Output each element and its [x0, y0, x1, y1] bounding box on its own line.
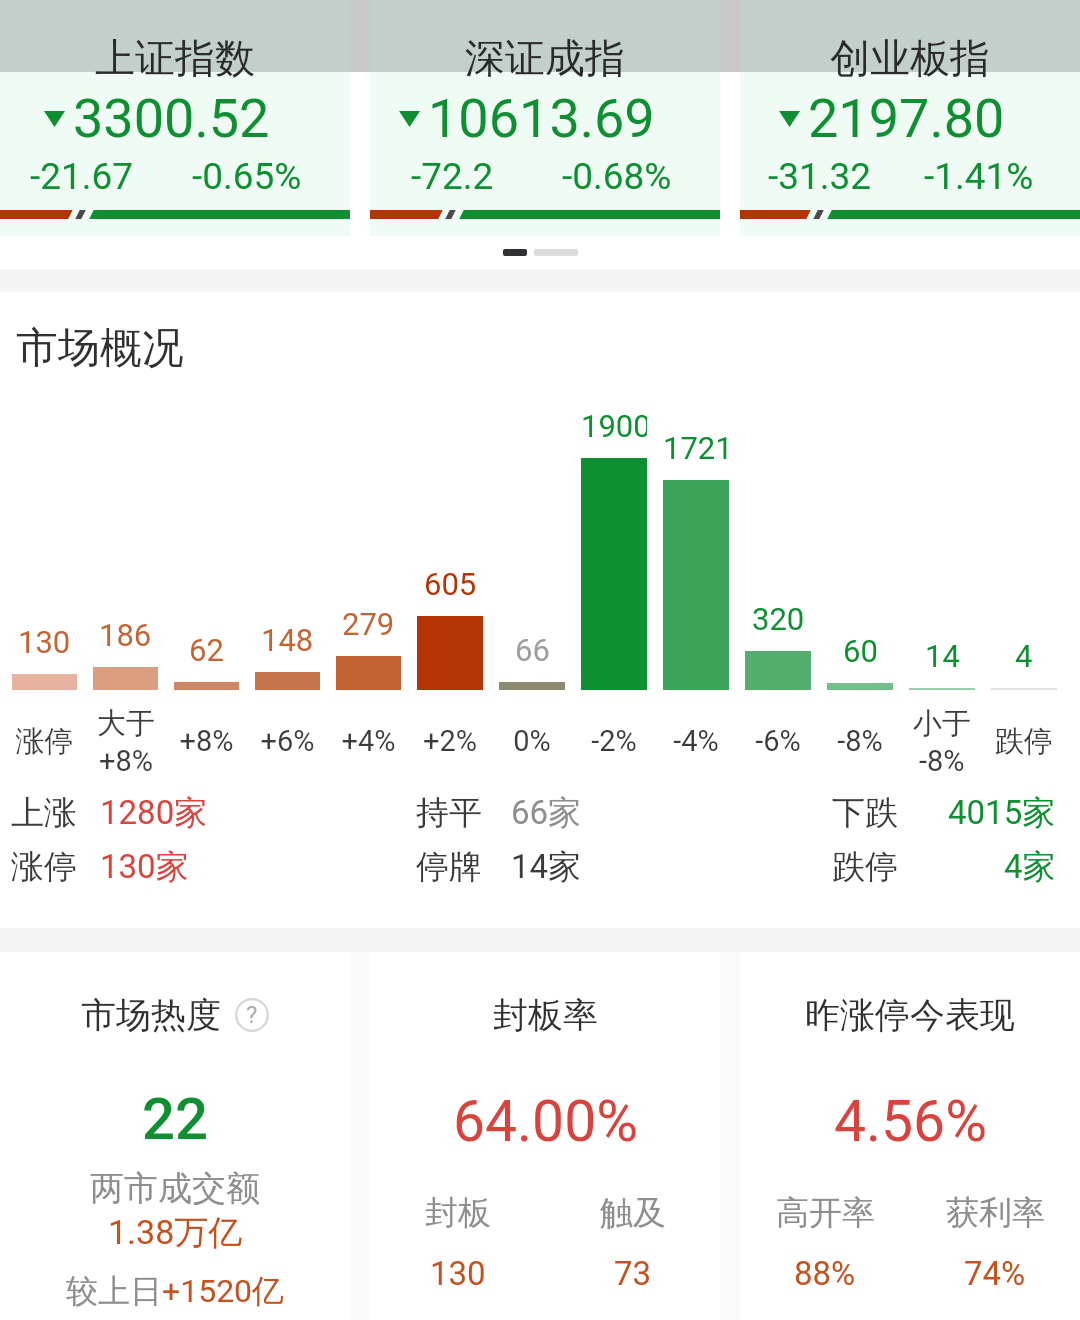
staticText: 1721 [663, 430, 729, 466]
staticText: 1900 [581, 408, 647, 444]
staticText: 深证成指 [370, 33, 720, 83]
staticText: -8% [827, 724, 893, 758]
button[interactable]: 市场热度 [0, 952, 350, 1320]
staticText: 10613.69 [428, 87, 655, 150]
staticText: 昨涨停今表现 [805, 993, 1015, 1037]
staticText: -6% [745, 724, 811, 758]
staticText: 小于 [913, 705, 971, 742]
staticText: 66家 [511, 792, 582, 833]
staticText: 创业板指 [740, 33, 1080, 83]
staticText: 186 [99, 617, 152, 653]
staticText: +6% [255, 724, 320, 758]
staticText: 跌停 [991, 723, 1057, 760]
staticText: 60 [843, 633, 878, 669]
staticText: 较上日+1520亿 [66, 1271, 285, 1311]
staticText: 3300.52 [73, 87, 270, 150]
staticText: 大于 [97, 705, 155, 742]
staticText: +8% [99, 744, 153, 778]
staticText: 148 [261, 622, 314, 658]
staticText: -72.2 [411, 155, 494, 198]
button[interactable]: 上证指数 [0, 0, 350, 236]
staticText: 下跌 [832, 792, 898, 833]
staticText: 1280家 [100, 792, 208, 833]
button[interactable]: 封板率 [370, 952, 720, 1320]
staticText: 14 [925, 638, 960, 674]
staticText: 1.38万亿 [108, 1211, 243, 1254]
button[interactable]: 创业板指 [740, 0, 1080, 236]
staticText: -31.32 [768, 155, 872, 198]
staticText: 4015家 [948, 792, 1056, 833]
staticText: 73 [614, 1254, 652, 1293]
staticText: 74% [964, 1254, 1026, 1293]
staticText: -2% [581, 724, 647, 758]
staticText: -0.68% [562, 155, 672, 198]
staticText: +8% [174, 724, 239, 758]
button[interactable]: 帮助 [235, 998, 269, 1032]
staticText: 130 [18, 624, 71, 660]
staticText: 22 [142, 1085, 208, 1153]
button[interactable]: 深证成指 [370, 0, 720, 236]
staticText: 14家 [511, 846, 582, 887]
staticText: 停牌 [416, 846, 482, 887]
staticText: 320 [752, 601, 805, 637]
staticText: 4 [1015, 638, 1033, 674]
staticText: 4.56% [834, 1088, 987, 1155]
staticText: 封板率 [493, 993, 598, 1037]
staticText: ? [246, 1001, 258, 1029]
staticText: 持平 [416, 792, 482, 833]
staticText: 两市成交额 [90, 1167, 260, 1210]
staticText: 市场热度 [81, 993, 221, 1037]
staticText: 0% [499, 724, 565, 758]
staticText: 64.00% [453, 1088, 638, 1155]
staticText: 获利率 [946, 1192, 1045, 1234]
staticText: 触及 [600, 1192, 666, 1234]
staticText: 涨停 [11, 846, 77, 887]
staticText: 130家 [100, 846, 189, 887]
staticText: 涨停 [12, 723, 77, 760]
staticText: 上涨 [11, 792, 77, 833]
staticText: 跌停 [832, 846, 898, 887]
staticText: 62 [189, 632, 224, 668]
staticText: 130 [430, 1254, 486, 1293]
staticText: 88% [794, 1254, 856, 1293]
staticText: 市场概况 [16, 322, 184, 375]
staticText: -4% [663, 724, 729, 758]
staticText: 上证指数 [0, 33, 350, 83]
staticText: -21.67 [30, 155, 134, 198]
staticText: -1.41% [924, 155, 1034, 198]
staticText: 4家 [1004, 846, 1056, 887]
staticText: 高开率 [776, 1192, 875, 1234]
staticText: 2197.80 [808, 87, 1005, 150]
staticText: 66 [515, 632, 550, 668]
staticText: 605 [424, 566, 477, 602]
staticText: +4% [336, 724, 401, 758]
staticText: -8% [919, 744, 965, 778]
staticText: 封板 [425, 1192, 491, 1234]
staticText: -0.65% [192, 155, 302, 198]
staticText: +2% [417, 724, 483, 758]
staticText: 279 [342, 606, 395, 642]
button[interactable]: 昨涨停今表现 [740, 952, 1080, 1320]
